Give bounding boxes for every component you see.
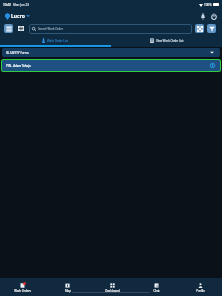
button[interactable]: Dashboard: [90, 281, 134, 295]
button[interactable]: Work Orders: [0, 281, 45, 295]
button[interactable]: PIN - Adam Tahoja: [2, 60, 220, 71]
staticText: Search Work Order: [38, 27, 63, 31]
staticText: Profile: [196, 289, 205, 293]
staticText: Chat: [153, 289, 160, 293]
button[interactable]: Map: [45, 281, 90, 295]
button[interactable]: Profile: [178, 281, 222, 295]
staticText: 00-SAFETY Forms: [6, 51, 29, 55]
staticText: Mon Jun 23: [13, 3, 29, 7]
button[interactable]: Work Order List: [0, 34, 111, 47]
button[interactable]: 00-SAFETY Forms: [2, 48, 220, 57]
staticText: Dashboard: [105, 289, 120, 293]
button[interactable]: Notifications: [197, 11, 208, 22]
button[interactable]: Chat: [134, 281, 178, 295]
staticText: Work Order List: [47, 39, 69, 43]
button[interactable]: View Work Order List: [111, 34, 222, 47]
staticText: View Work Order List: [156, 39, 184, 43]
staticText: 10:40: [3, 3, 11, 7]
button[interactable]: List view: [4, 24, 13, 33]
button[interactable]: Card view: [16, 24, 25, 33]
staticText: 100%: [204, 3, 212, 7]
staticText: PIN - Adam Tahoja: [6, 64, 31, 68]
button[interactable]: Filter: [207, 24, 216, 33]
button[interactable]: Search Work Order: [29, 24, 192, 34]
staticText: Lucro: [11, 13, 25, 20]
button[interactable]: Collapse: [195, 24, 204, 33]
staticText: Work Orders: [14, 289, 31, 293]
staticText: Map: [65, 289, 71, 293]
button[interactable]: Power / Log out: [208, 11, 219, 22]
